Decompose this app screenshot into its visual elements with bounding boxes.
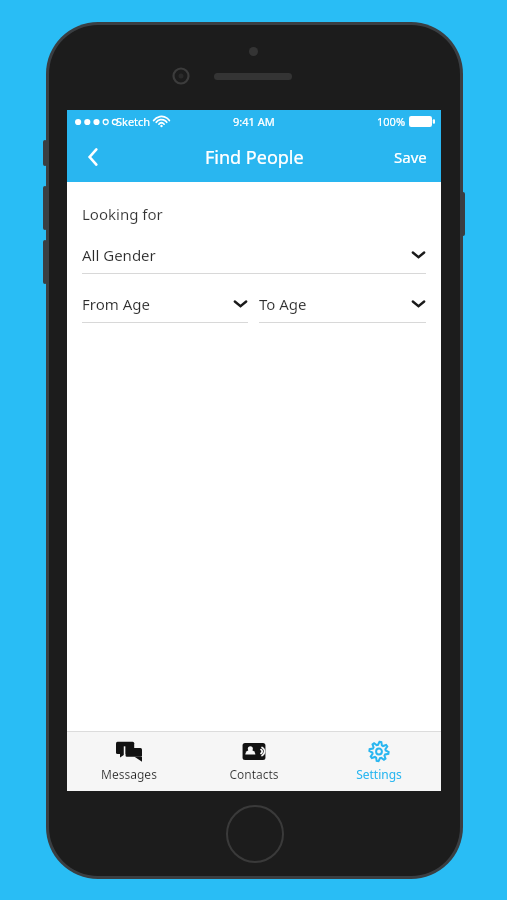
button[interactable]: Back <box>67 132 119 182</box>
button[interactable]: Contacts <box>191 732 316 791</box>
button[interactable]: All Gender <box>82 241 426 274</box>
staticText: 9:41 AM <box>233 114 275 129</box>
button[interactable]: To Age <box>259 290 426 323</box>
button[interactable]: Settings <box>316 732 441 791</box>
staticText: Find People <box>205 145 304 170</box>
staticText: Save <box>394 147 427 167</box>
staticText: All Gender <box>82 245 411 265</box>
staticText: Sketch <box>116 114 151 129</box>
button[interactable]: Messages <box>67 732 191 791</box>
staticText: Looking for <box>82 204 163 224</box>
staticText: Contacts <box>229 766 279 782</box>
staticText: 100% <box>377 114 406 129</box>
staticText: Messages <box>101 766 157 782</box>
button[interactable]: Save <box>380 132 441 182</box>
staticText: Settings <box>356 766 402 782</box>
button[interactable]: From Age <box>82 290 248 323</box>
staticText: To Age <box>259 294 411 314</box>
staticText: From Age <box>82 294 233 314</box>
